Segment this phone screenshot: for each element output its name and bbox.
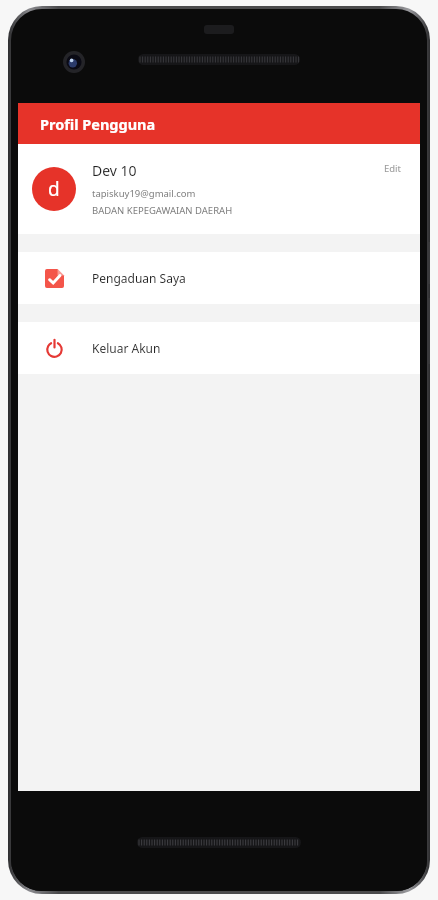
staticText: Pengaduan Saya bbox=[92, 270, 186, 286]
button[interactable]: d bbox=[18, 144, 420, 234]
button[interactable]: Pengaduan Saya bbox=[18, 252, 420, 304]
button[interactable]: Edit bbox=[380, 160, 406, 177]
staticText: BADAN KEPEGAWAIAN DAERAH bbox=[92, 204, 233, 217]
staticText: tapiskuy19@gmail.com bbox=[92, 187, 196, 200]
other: Pengaduan Saya bbox=[32, 256, 76, 300]
staticText: Profil Pengguna bbox=[40, 114, 156, 134]
button[interactable]: Keluar Akun bbox=[18, 322, 420, 374]
staticText: d bbox=[48, 176, 60, 202]
staticText: Edit bbox=[384, 162, 402, 175]
staticText: Dev 10 bbox=[92, 161, 137, 180]
other: Keluar Akun bbox=[32, 326, 76, 370]
staticText: Keluar Akun bbox=[92, 340, 161, 356]
